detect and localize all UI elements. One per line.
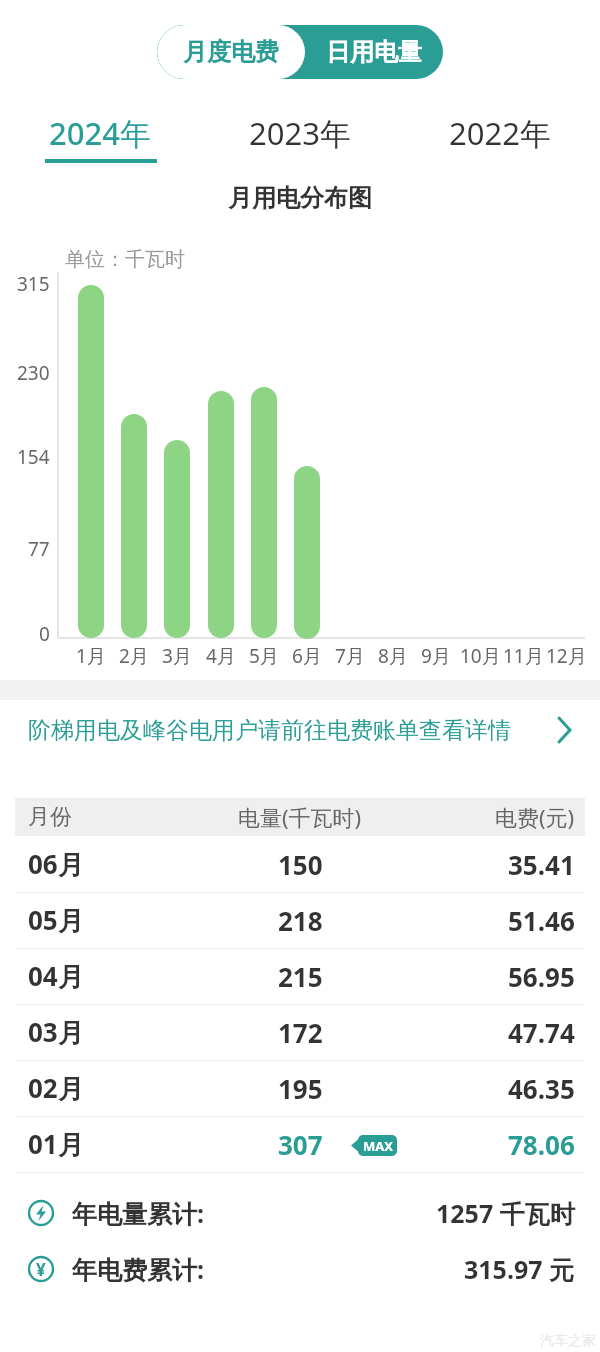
staticText: 8月 bbox=[378, 643, 408, 669]
staticText: 11月 bbox=[503, 643, 544, 669]
staticText: 阶梯用电及峰谷电用户请前往电费账单查看详情 bbox=[28, 716, 511, 745]
button[interactable]: 2024年 bbox=[30, 110, 170, 156]
staticText: 0 bbox=[39, 621, 50, 647]
staticText: 1257 千瓦时 bbox=[436, 1196, 575, 1230]
staticText: 年电费累计: bbox=[72, 1252, 205, 1286]
staticText: 电费(元) bbox=[495, 802, 575, 832]
staticText: 150 bbox=[278, 847, 323, 882]
staticText: 5月 bbox=[249, 643, 279, 669]
staticText: 10月 bbox=[460, 643, 501, 669]
staticText: 315.97 元 bbox=[464, 1252, 575, 1286]
staticText: 02月 bbox=[28, 1070, 84, 1106]
button[interactable]: 日用电量 bbox=[305, 25, 443, 79]
staticText: 2022年 bbox=[449, 112, 551, 154]
staticText: 电量(千瓦时) bbox=[238, 802, 362, 832]
staticText: 年电量累计: bbox=[72, 1196, 205, 1230]
staticText: 195 bbox=[278, 1071, 323, 1106]
button[interactable]: 2023年 bbox=[230, 110, 370, 156]
staticText: 日用电量 bbox=[326, 37, 422, 67]
staticText: 6月 bbox=[292, 643, 322, 669]
staticText: 218 bbox=[278, 903, 323, 938]
staticText: 78.06 bbox=[508, 1127, 575, 1162]
staticText: 月份 bbox=[28, 803, 72, 831]
staticText: 12月 bbox=[546, 643, 587, 669]
staticText: 3月 bbox=[162, 643, 192, 669]
staticText: 单位：千瓦时 bbox=[65, 247, 185, 272]
staticText: 4月 bbox=[206, 643, 236, 669]
staticText: 315 bbox=[17, 271, 50, 297]
staticText: 56.95 bbox=[508, 959, 575, 994]
staticText: 1月 bbox=[76, 643, 106, 669]
staticText: 77 bbox=[28, 536, 50, 562]
staticText: 月用电分布图 bbox=[228, 183, 372, 213]
staticText: 172 bbox=[278, 1015, 323, 1050]
staticText: ¥ bbox=[36, 1258, 46, 1281]
staticText: 9月 bbox=[421, 643, 451, 669]
button[interactable]: 阶梯用电及峰谷电用户请前往电费账单查看详情 bbox=[0, 700, 600, 760]
staticText: 154 bbox=[17, 444, 50, 470]
staticText: 2024年 bbox=[49, 112, 151, 154]
staticText: 47.74 bbox=[508, 1015, 575, 1050]
staticText: 215 bbox=[278, 959, 323, 994]
staticText: 46.35 bbox=[508, 1071, 575, 1106]
staticText: 7月 bbox=[335, 643, 365, 669]
staticText: 05月 bbox=[28, 902, 84, 938]
staticText: 51.46 bbox=[508, 903, 575, 938]
staticText: 307 bbox=[278, 1127, 323, 1162]
button[interactable]: 2022年 bbox=[430, 110, 570, 156]
staticText: 2023年 bbox=[249, 112, 351, 154]
staticText: 月度电费 bbox=[183, 37, 279, 67]
staticText: 230 bbox=[17, 360, 50, 386]
staticText: 汽车之家 bbox=[540, 1332, 596, 1350]
staticText: 06月 bbox=[28, 846, 84, 882]
staticText: 2月 bbox=[119, 643, 149, 669]
staticText: MAX bbox=[363, 1137, 393, 1155]
staticText: 35.41 bbox=[508, 847, 575, 882]
staticText: 04月 bbox=[28, 958, 84, 994]
button[interactable]: 月度电费 bbox=[157, 25, 305, 79]
staticText: 01月 bbox=[28, 1126, 84, 1162]
staticText: 03月 bbox=[28, 1014, 84, 1050]
